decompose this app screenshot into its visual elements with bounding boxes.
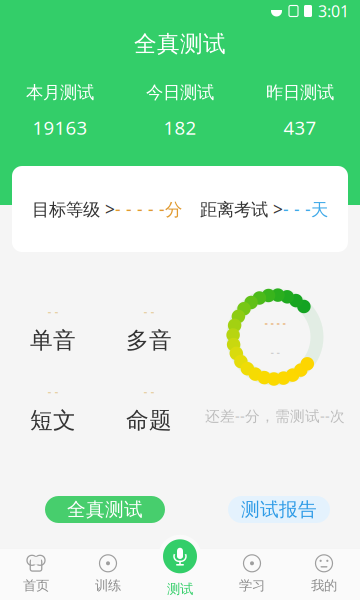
button[interactable]: 首页 <box>0 548 72 600</box>
staticText: - - <box>47 304 58 319</box>
staticText: 182 <box>163 115 196 140</box>
staticText: 首页 <box>23 577 49 594</box>
button[interactable]: 学习 <box>216 548 288 600</box>
button[interactable]: - - <box>8 302 98 356</box>
staticText: - - <box>270 344 279 359</box>
staticText: 测试 <box>167 581 193 597</box>
staticText: 我的 <box>311 577 337 594</box>
button[interactable]: 测试 <box>144 548 216 600</box>
button[interactable]: 全真测试 <box>45 496 165 523</box>
button[interactable]: - - <box>104 302 194 356</box>
staticText: 距离考试 > <box>200 197 283 220</box>
button[interactable]: 距离考试 > <box>200 187 328 231</box>
staticText: 学习 <box>239 577 265 594</box>
staticText: - - <box>143 384 154 399</box>
staticText: 437 <box>283 115 316 140</box>
staticText: 今日测试 <box>146 82 214 103</box>
staticText: 本月测试 <box>26 82 94 103</box>
staticText: - - - - -分 <box>115 197 182 220</box>
staticText: 全真测试 <box>134 30 226 58</box>
staticText: - - - - <box>264 315 285 329</box>
button[interactable]: - - <box>104 382 194 436</box>
staticText: - - -天 <box>283 197 328 220</box>
staticText: 训练 <box>95 577 121 594</box>
staticText: 单音 <box>30 326 76 354</box>
staticText: 昨日测试 <box>266 82 334 103</box>
staticText: - - <box>143 304 154 319</box>
button[interactable]: 目标等级 > <box>32 187 182 231</box>
staticText: 多音 <box>126 326 172 354</box>
staticText: 还差--分，需测试--次 <box>205 406 345 425</box>
button[interactable]: - - <box>8 382 98 436</box>
staticText: 目标等级 > <box>32 197 115 220</box>
button[interactable]: 我的 <box>288 548 360 600</box>
staticText: - - <box>47 384 58 399</box>
staticText: 短文 <box>30 406 76 434</box>
button[interactable]: 训练 <box>72 548 144 600</box>
staticText: 命题 <box>126 406 172 434</box>
staticText: 3:01 <box>318 0 349 22</box>
staticText: 测试报告 <box>241 498 317 521</box>
staticText: 19163 <box>32 115 87 140</box>
button[interactable]: 测试报告 <box>228 496 330 523</box>
staticText: 全真测试 <box>67 498 143 521</box>
